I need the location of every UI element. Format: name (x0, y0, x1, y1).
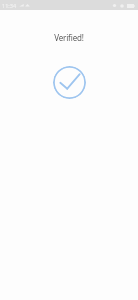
button[interactable]: Verified (53, 66, 86, 99)
staticText: Verified! (0, 32, 138, 43)
staticText: 11:34 (2, 2, 17, 9)
